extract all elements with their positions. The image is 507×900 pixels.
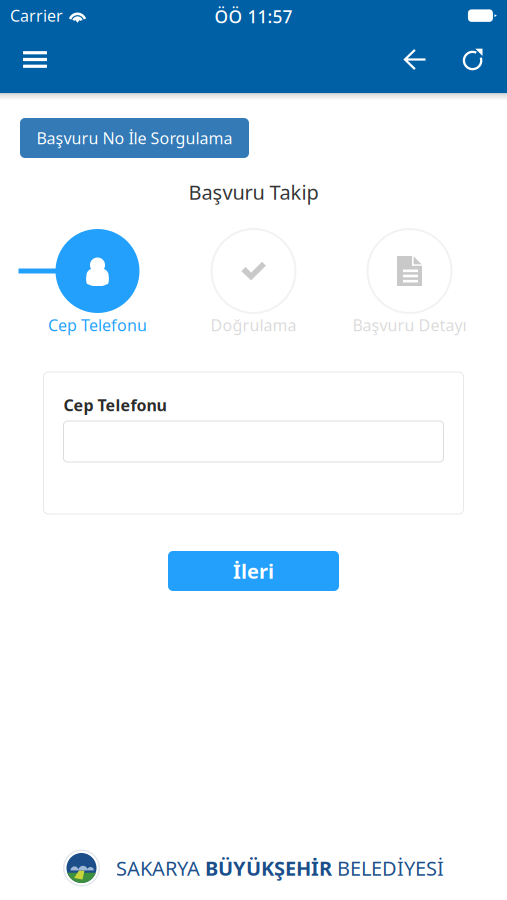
button[interactable]: İleri bbox=[168, 551, 339, 591]
staticText: Cep Telefonu bbox=[48, 314, 147, 336]
staticText: SAKARYA BÜYÜKŞEHİR BELEDİYESİ bbox=[116, 855, 444, 881]
staticText: Cep Telefonu bbox=[63, 394, 166, 416]
staticText: Carrier bbox=[10, 5, 63, 26]
staticText: ÖÖ 11:57 bbox=[214, 5, 292, 28]
button[interactable]: Menu bbox=[13, 36, 57, 83]
staticText: Başvuru Detayı bbox=[352, 314, 466, 336]
button[interactable]: Back bbox=[393, 36, 437, 83]
button[interactable]: Başvuru No İle Sorgulama bbox=[20, 118, 249, 158]
staticText: Başvuru No İle Sorgulama bbox=[36, 127, 232, 149]
staticText: Doğrulama bbox=[210, 314, 296, 336]
staticText: İleri bbox=[233, 558, 274, 584]
button[interactable]: Reload bbox=[452, 36, 496, 83]
staticText: Başvuru Takip bbox=[188, 179, 318, 205]
